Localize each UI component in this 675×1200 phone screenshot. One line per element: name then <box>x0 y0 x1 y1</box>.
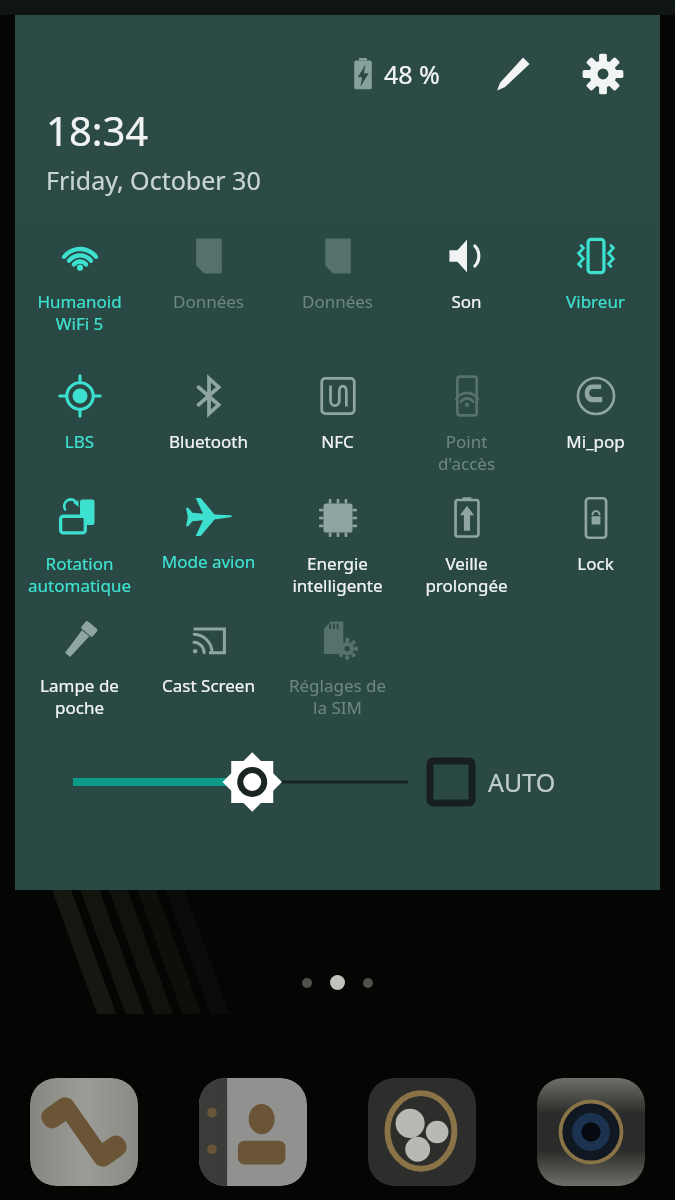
staticText: NFC <box>273 430 402 453</box>
staticText: Cast Screen <box>144 674 273 697</box>
button[interactable]: Mode avion <box>144 480 273 573</box>
button[interactable]: Lampe de poche <box>15 602 144 719</box>
staticText: 18:34 <box>46 103 149 157</box>
button[interactable]: Messaging <box>368 1078 476 1186</box>
staticText: AUTO <box>488 765 556 799</box>
button[interactable]: Veille prolongée <box>402 480 531 597</box>
button[interactable]: Réglages de la SIM <box>273 602 402 719</box>
button[interactable]: Phone <box>30 1078 138 1186</box>
staticText: LBS <box>15 430 144 453</box>
button[interactable]: Energie intelligente <box>273 480 402 597</box>
staticText: Lock <box>531 552 660 575</box>
staticText: Lampe de poche <box>15 674 144 719</box>
button[interactable]: Son <box>402 218 531 313</box>
button[interactable]: Contacts <box>199 1078 307 1186</box>
staticText: Rotation automatique <box>15 552 144 597</box>
button[interactable]: Cast Screen <box>144 602 273 697</box>
staticText: Point d'accès <box>402 430 531 475</box>
staticText: Son <box>402 290 531 313</box>
button[interactable]: Settings <box>576 47 630 101</box>
staticText: Energie intelligente <box>273 552 402 597</box>
button[interactable]: Brightness <box>15 734 430 830</box>
staticText: Réglages de la SIM <box>273 674 402 719</box>
button[interactable]: Données <box>144 218 273 313</box>
staticText: Données <box>144 290 273 313</box>
button[interactable]: LBS <box>15 358 144 453</box>
button[interactable]: Données <box>273 218 402 313</box>
button[interactable]: Point d'accès <box>402 358 531 475</box>
button[interactable]: NFC <box>273 358 402 453</box>
staticText: Friday, October 30 <box>46 163 261 197</box>
staticText: Vibreur <box>531 290 660 313</box>
staticText: Mode avion <box>144 550 273 573</box>
button[interactable]: 48 % <box>346 51 446 97</box>
staticText: Bluetooth <box>144 430 273 453</box>
button[interactable]: Bluetooth <box>144 358 273 453</box>
button[interactable]: Mi_pop <box>531 358 660 453</box>
button[interactable]: AUTO <box>430 734 660 830</box>
staticText: 48 % <box>384 57 440 91</box>
staticText: Veille prolongée <box>402 552 531 597</box>
button[interactable]: Camera <box>537 1078 645 1186</box>
staticText: Humanoid WiFi 5 <box>15 290 144 335</box>
button[interactable]: Humanoid WiFi 5 <box>15 218 144 335</box>
button[interactable]: Edit <box>486 47 540 101</box>
staticText: Données <box>273 290 402 313</box>
staticText: Mi_pop <box>531 430 660 453</box>
button[interactable]: Vibreur <box>531 218 660 313</box>
button[interactable]: Rotation automatique <box>15 480 144 597</box>
button[interactable]: Lock <box>531 480 660 575</box>
